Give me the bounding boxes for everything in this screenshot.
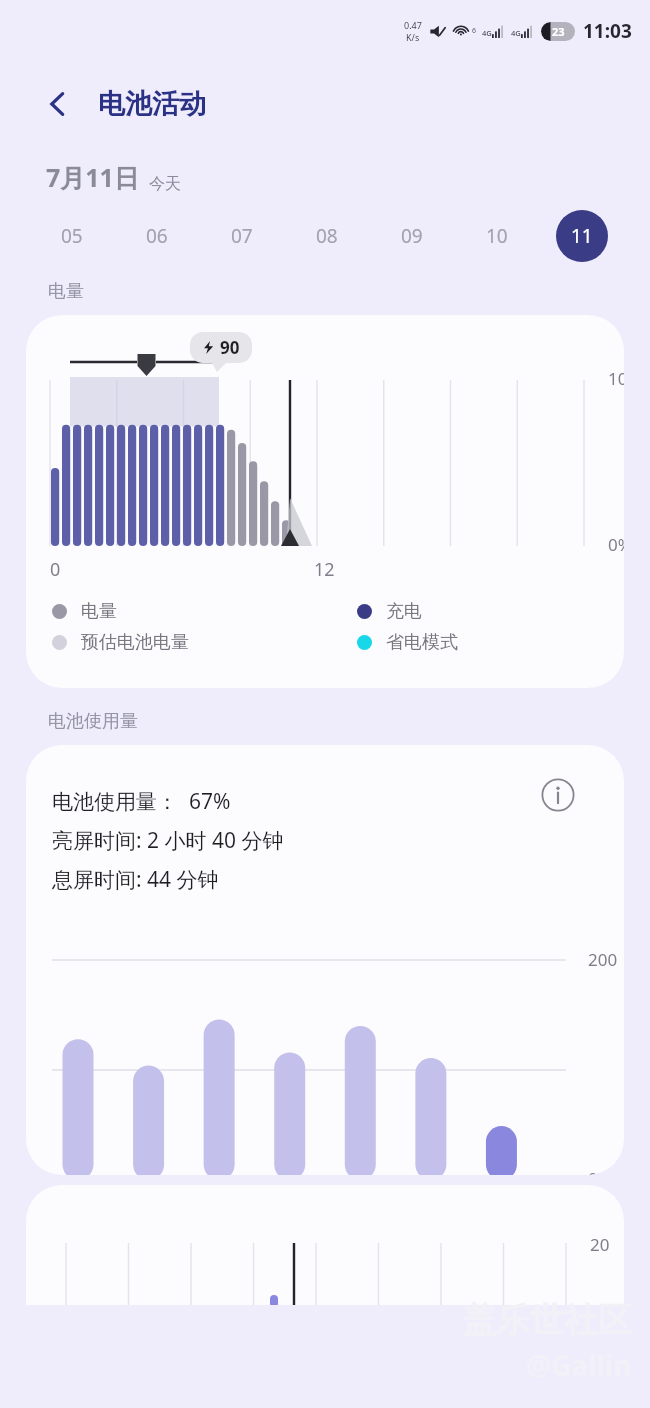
staticText: 11:03	[583, 18, 632, 44]
staticText: K/s	[406, 31, 420, 43]
button[interactable]: 06	[114, 208, 199, 264]
button[interactable]: 09	[369, 208, 454, 264]
button[interactable]: 10	[454, 208, 539, 264]
staticText: 4G	[482, 28, 492, 38]
staticText: 盖乐世社区	[462, 1299, 632, 1342]
staticText: 0%	[608, 533, 624, 556]
staticText: 100	[608, 367, 624, 390]
staticText: 电量	[81, 600, 117, 623]
staticText: 05	[61, 223, 83, 249]
staticText: 200	[588, 948, 618, 971]
staticText: 06	[146, 223, 168, 249]
button[interactable]: Info	[534, 771, 582, 819]
staticText: 07	[231, 223, 253, 249]
staticText: 7月11日	[46, 160, 139, 194]
staticText: 23	[552, 24, 565, 39]
staticText: 11	[571, 223, 593, 249]
staticText: 0%	[588, 1167, 612, 1175]
staticText: 0	[50, 557, 61, 582]
staticText: 10	[486, 223, 508, 249]
staticText: 0.47	[404, 19, 422, 31]
button[interactable]: Back	[36, 82, 80, 126]
staticText: 充电	[386, 600, 422, 623]
staticText: 08	[316, 223, 338, 249]
staticText: 4G	[511, 28, 521, 38]
button[interactable]: 07	[199, 208, 284, 264]
staticText: 电池使用量	[48, 710, 138, 733]
staticText: 息屏时间: 44 分钟	[52, 865, 219, 894]
staticText: 电量	[48, 280, 84, 303]
staticText: 20	[590, 1233, 610, 1256]
staticText: 今天	[149, 174, 181, 194]
staticText: 电池活动	[98, 87, 206, 121]
staticText: 09	[401, 223, 423, 249]
staticText: 电池使用量： 67%	[52, 787, 231, 816]
staticText: 省电模式	[386, 631, 458, 654]
staticText: 12	[314, 557, 335, 582]
button[interactable]: 08	[284, 208, 369, 264]
staticText: 90	[220, 336, 240, 359]
staticText: 亮屏时间: 2 小时 40 分钟	[52, 826, 284, 855]
button[interactable]: 11	[539, 208, 624, 264]
staticText: 6	[472, 26, 477, 36]
staticText: 预估电池电量	[81, 631, 189, 654]
button[interactable]: 05	[30, 208, 114, 264]
